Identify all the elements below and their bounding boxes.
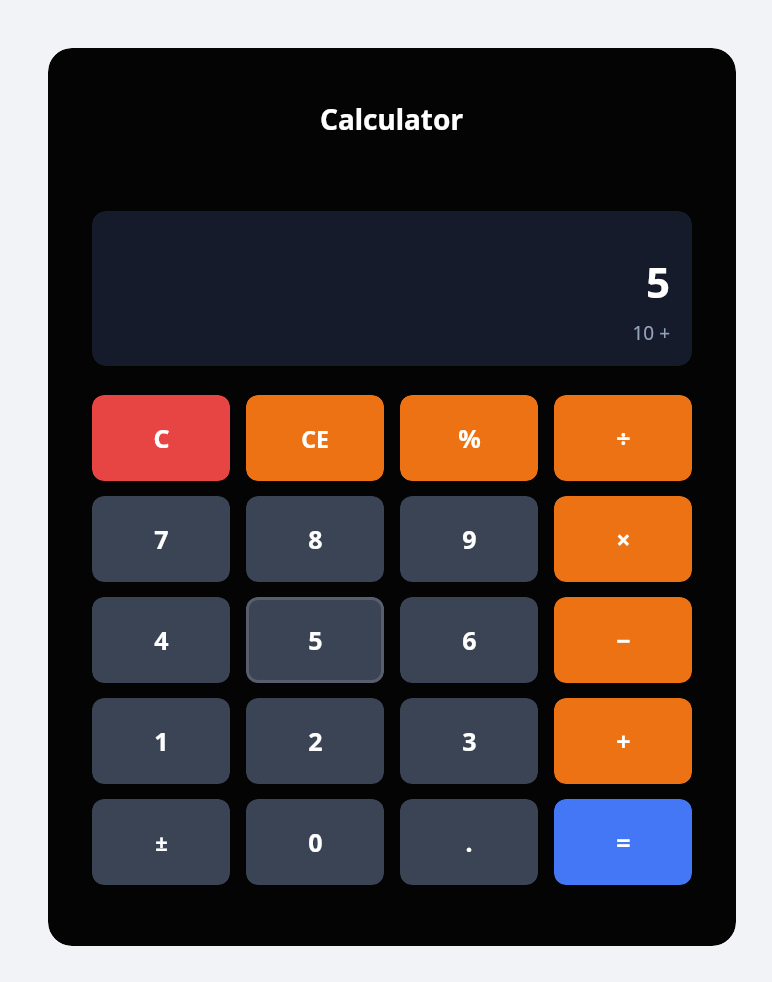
- staticText: 8: [308, 522, 323, 556]
- staticText: 4: [154, 623, 169, 657]
- staticText: 6: [462, 623, 477, 657]
- staticText: ±: [155, 827, 168, 857]
- staticText: 9: [462, 522, 477, 556]
- staticText: 1: [154, 724, 169, 758]
- staticText: 5: [645, 253, 670, 310]
- staticText: ×: [616, 522, 631, 556]
- button[interactable]: 6: [400, 597, 538, 683]
- staticText: 10 +: [632, 320, 670, 346]
- staticText: CE: [301, 423, 329, 454]
- staticText: 5: [308, 623, 323, 657]
- button[interactable]: 4: [92, 597, 230, 683]
- button[interactable]: 2: [246, 698, 384, 784]
- staticText: +: [616, 724, 631, 758]
- button[interactable]: 8: [246, 496, 384, 582]
- button[interactable]: Decimal point: [400, 799, 538, 885]
- button[interactable]: 7: [92, 496, 230, 582]
- button[interactable]: 5: [246, 597, 384, 683]
- button[interactable]: Multiply: [554, 496, 692, 582]
- staticText: =: [616, 825, 631, 859]
- staticText: ÷: [616, 421, 631, 455]
- button[interactable]: Divide: [554, 395, 692, 481]
- staticText: 7: [154, 522, 169, 556]
- button[interactable]: Plus: [554, 698, 692, 784]
- staticText: %: [458, 421, 481, 455]
- staticText: −: [616, 623, 631, 657]
- button[interactable]: Minus: [554, 597, 692, 683]
- button[interactable]: Percent: [400, 395, 538, 481]
- staticText: 2: [308, 724, 323, 758]
- button[interactable]: 9: [400, 496, 538, 582]
- button[interactable]: 0: [246, 799, 384, 885]
- staticText: 3: [462, 724, 477, 758]
- staticText: .: [465, 825, 473, 859]
- button[interactable]: Clear entry: [246, 395, 384, 481]
- button[interactable]: Equals: [554, 799, 692, 885]
- button[interactable]: Toggle sign: [92, 799, 230, 885]
- button[interactable]: 1: [92, 698, 230, 784]
- button[interactable]: 3: [400, 698, 538, 784]
- staticText: C: [153, 421, 170, 455]
- staticText: Calculator: [320, 100, 464, 138]
- button[interactable]: Clear: [92, 395, 230, 481]
- staticText: 0: [308, 825, 323, 859]
